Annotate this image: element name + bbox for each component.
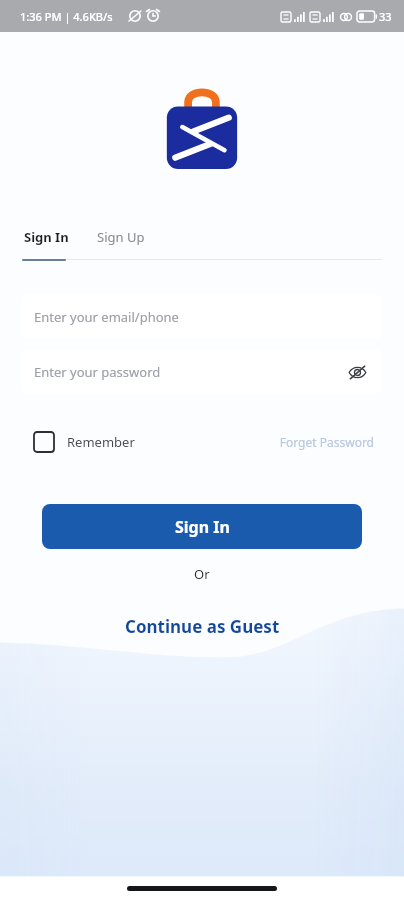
staticText: Enter your email/phone: [34, 308, 179, 326]
button[interactable]: Sign In: [22, 224, 71, 250]
button[interactable]: Remember: [34, 428, 135, 456]
staticText: 33: [379, 9, 392, 24]
button[interactable]: Continue as Guest: [113, 609, 292, 644]
staticText: Remember: [67, 433, 135, 451]
button[interactable]: Enter your password: [22, 349, 382, 394]
button[interactable]: Sign Up: [95, 224, 147, 250]
staticText: Or: [194, 565, 210, 583]
button[interactable]: Show password: [342, 357, 372, 387]
button[interactable]: Enter your email/phone: [22, 294, 382, 339]
button[interactable]: Forget Password: [277, 428, 376, 456]
staticText: Sign In: [175, 516, 230, 538]
staticText: 1:36 PM | 4.6KB/s: [20, 9, 113, 24]
button[interactable]: Sign In: [42, 504, 362, 549]
staticText: Sign In: [24, 228, 69, 246]
staticText: Enter your password: [34, 363, 161, 381]
staticText: Forget Password: [279, 434, 374, 450]
staticText: Sign Up: [97, 228, 145, 246]
staticText: Continue as Guest: [125, 615, 280, 638]
